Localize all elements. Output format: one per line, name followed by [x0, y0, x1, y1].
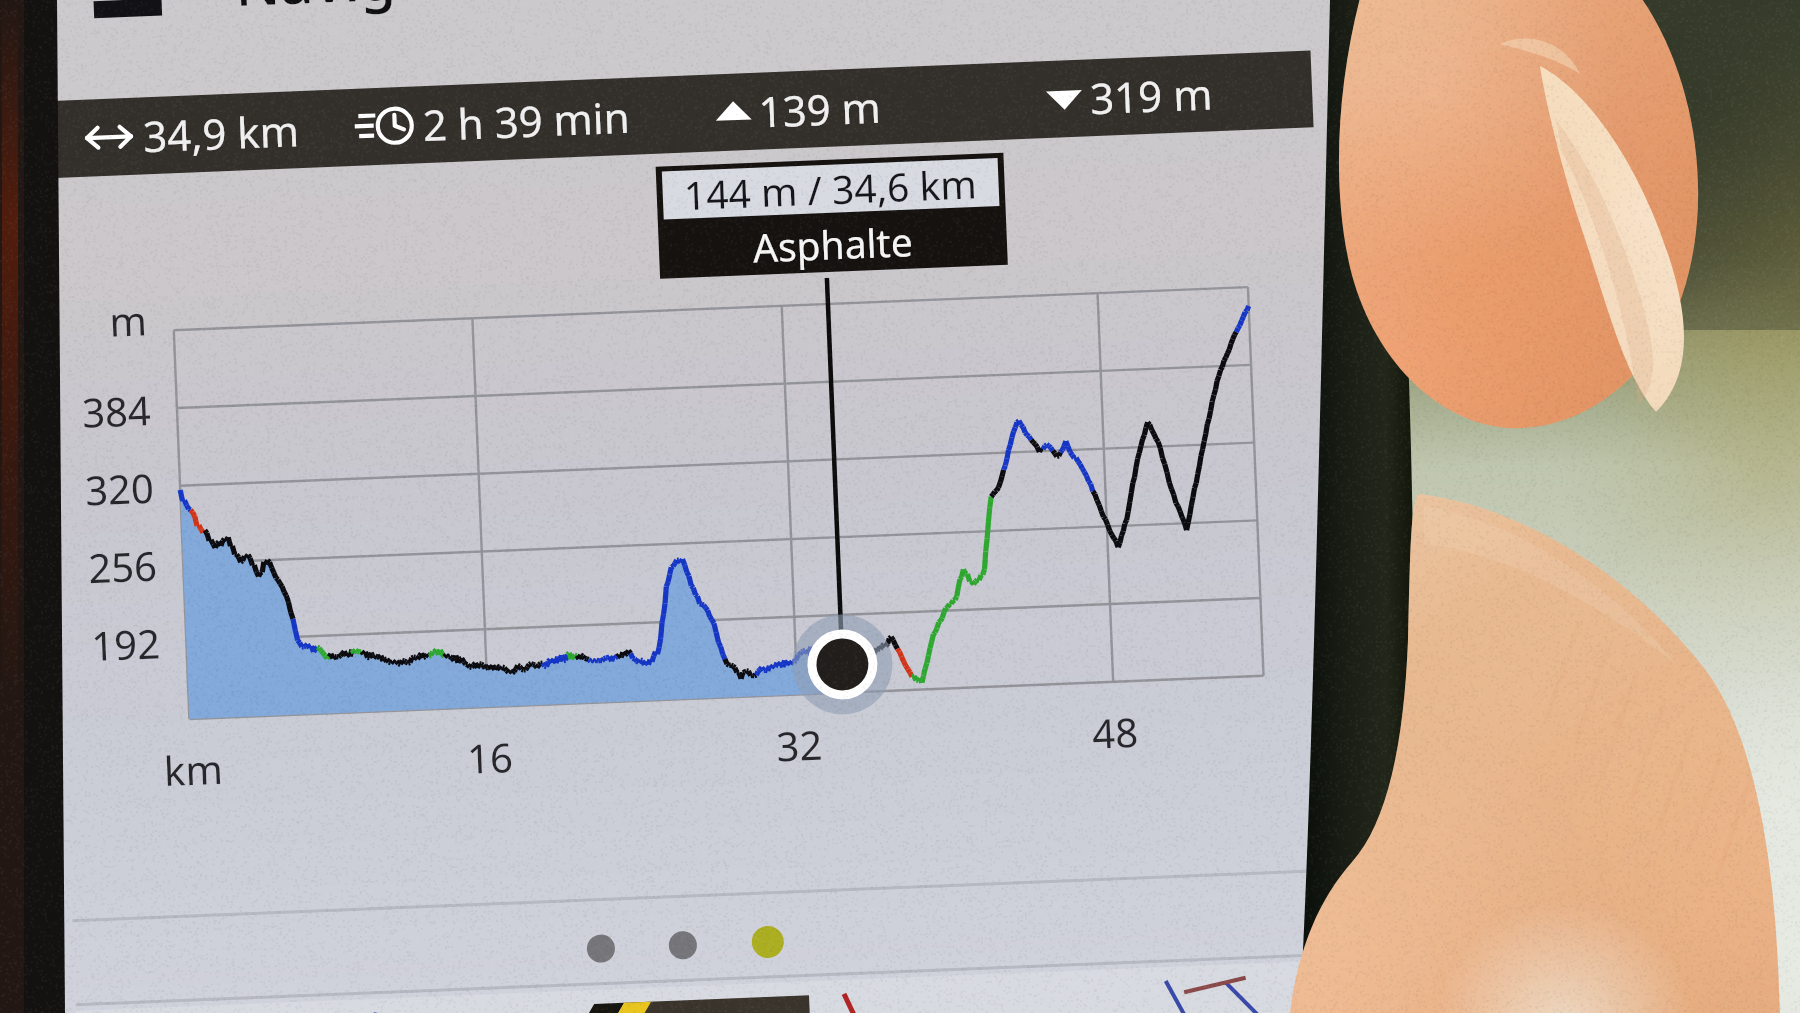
button[interactable]: Duration 2 h 39 min [370, 78, 680, 158]
button[interactable]: Map preview [60, 980, 1300, 1013]
button[interactable]: Waypoint 144 m at 34,6 km, Asphalte [650, 150, 1010, 280]
button[interactable]: Page 3, elevation profile [735, 908, 805, 968]
button[interactable]: Navigation [240, 0, 660, 40]
button[interactable]: Elevation profile chart [100, 300, 1280, 720]
button[interactable]: Total ascent 139 m [680, 62, 980, 142]
button[interactable]: Total distance 34,9 km [60, 90, 370, 170]
button[interactable]: Total descent 319 m [980, 48, 1300, 128]
button[interactable]: Page 2 [650, 912, 720, 972]
button[interactable]: Open navigation menu [60, 0, 240, 40]
button[interactable]: Page 1 [570, 915, 640, 975]
